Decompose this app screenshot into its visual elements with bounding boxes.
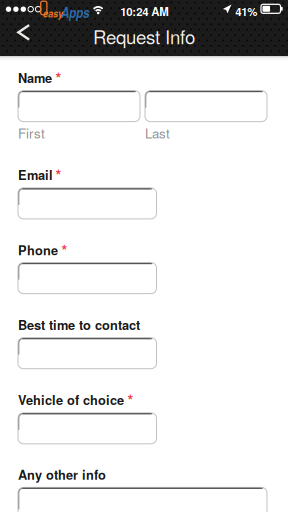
staticText: * [55,67,61,88]
button[interactable]: Any other info [18,487,267,512]
button[interactable]: Vehicle of choice [18,413,156,444]
button[interactable]: Best time to contact [18,338,156,369]
staticText: Best time to contact [18,315,140,334]
staticText: 41% [235,3,257,20]
staticText: Name [18,68,52,87]
staticText: Last [145,123,170,142]
button[interactable]: Back [0,18,44,56]
staticText: Any other info [18,465,106,484]
staticText: Phone [18,241,58,259]
button[interactable]: Phone [18,263,156,294]
staticText: * [55,164,61,185]
staticText: 10:24 AM [120,3,169,20]
button[interactable]: Last name [145,91,267,122]
staticText: Vehicle of choice [18,391,124,409]
button[interactable]: First name [18,91,140,122]
staticText: Email [18,165,53,184]
button[interactable]: Email [18,188,156,219]
staticText: * [127,389,133,410]
staticText: Request Info [93,23,195,49]
staticText: easy [43,5,63,21]
staticText: Apps [61,2,89,22]
staticText: * [61,239,67,260]
staticText: First [18,123,45,142]
